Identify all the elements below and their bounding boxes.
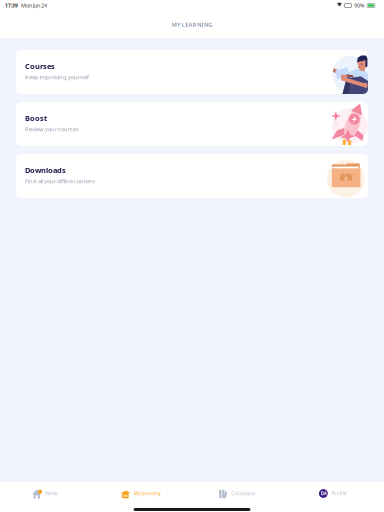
staticText: Keep improving yourself [25, 73, 89, 81]
staticText: Courses [25, 61, 55, 71]
staticText: Mon Jun 24 [18, 2, 47, 9]
staticText: DA [321, 491, 327, 496]
staticText: Profile [332, 490, 347, 497]
button[interactable]: Catalogue [189, 487, 285, 500]
staticText: Boost [25, 113, 47, 123]
staticText: My Learning [134, 490, 161, 497]
staticText: Find all your offline content [25, 177, 95, 185]
button[interactable]: Courses [16, 50, 368, 94]
staticText: Home [45, 490, 58, 497]
button[interactable]: Downloads [16, 154, 368, 198]
staticText: Downloads [25, 165, 66, 175]
button[interactable]: Home [0, 487, 93, 500]
button[interactable]: Boost [16, 102, 368, 146]
button[interactable]: My Learning [93, 487, 189, 500]
staticText: Catalogue [231, 490, 255, 497]
staticText: MY LEARNING [172, 21, 212, 28]
staticText: 90% [354, 2, 365, 9]
button[interactable]: DA [285, 487, 381, 500]
staticText: 17:39 [5, 2, 18, 9]
staticText: Review your courses [25, 125, 79, 133]
